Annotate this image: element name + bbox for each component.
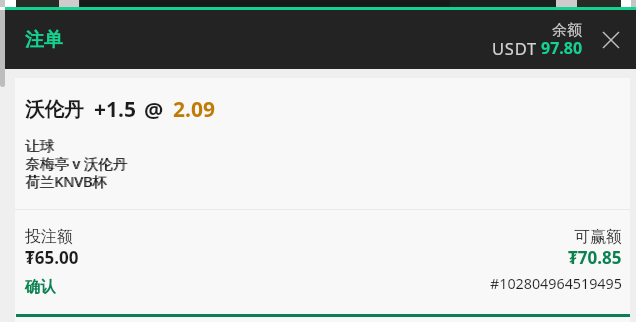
staticText: 97.80	[541, 37, 583, 59]
staticText: #102804964519495	[490, 274, 622, 293]
staticText: 余额	[552, 21, 582, 40]
button[interactable]: 沃伦丹	[15, 78, 630, 322]
staticText: 可赢额	[574, 227, 622, 247]
staticText: 让球 奈梅亭 v 沃伦丹 荷兰KNVB杯	[25, 137, 127, 191]
staticText: 2.09	[173, 95, 215, 124]
button[interactable]: Close	[594, 23, 628, 57]
staticText: 沃伦丹	[25, 97, 84, 122]
staticText: 让球 奈梅亭 v 沃伦丹 荷兰KNVB杯	[26, 137, 128, 191]
staticText: 注单	[25, 28, 63, 52]
staticText: @	[144, 95, 164, 124]
staticText: 投注额	[25, 227, 73, 247]
staticText: +1.5	[94, 95, 136, 124]
staticText: ₮70.85	[568, 246, 622, 269]
button[interactable]: 确认	[25, 277, 56, 297]
staticText: ₮65.00	[25, 246, 79, 269]
staticText: USDT	[492, 37, 538, 59]
staticText: 确认	[25, 277, 56, 297]
